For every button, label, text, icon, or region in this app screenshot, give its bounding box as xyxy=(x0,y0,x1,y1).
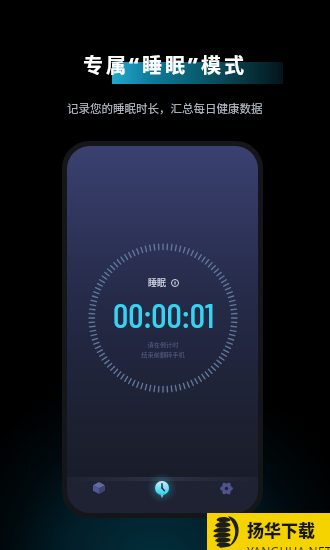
staticText: ” xyxy=(188,49,201,79)
staticText: 专属 xyxy=(83,50,129,79)
staticText: 模式 xyxy=(201,50,247,79)
staticText: 扬华下载 xyxy=(247,517,315,542)
button[interactable]: Devices xyxy=(67,470,130,506)
staticText: 记录您的睡眠时长，汇总每日健康数据 xyxy=(67,100,263,117)
staticText: 睡眠 xyxy=(142,50,188,79)
button[interactable]: Settings xyxy=(194,470,258,506)
button[interactable]: Timer xyxy=(130,470,194,506)
staticText: YANGHUA.NET xyxy=(247,543,330,550)
staticText: 睡眠 xyxy=(148,276,167,289)
staticText: 请在倒计时 结束前翻转手机 xyxy=(141,340,185,359)
staticText: “ xyxy=(129,49,142,79)
staticText: 00:00:01 xyxy=(113,294,214,335)
